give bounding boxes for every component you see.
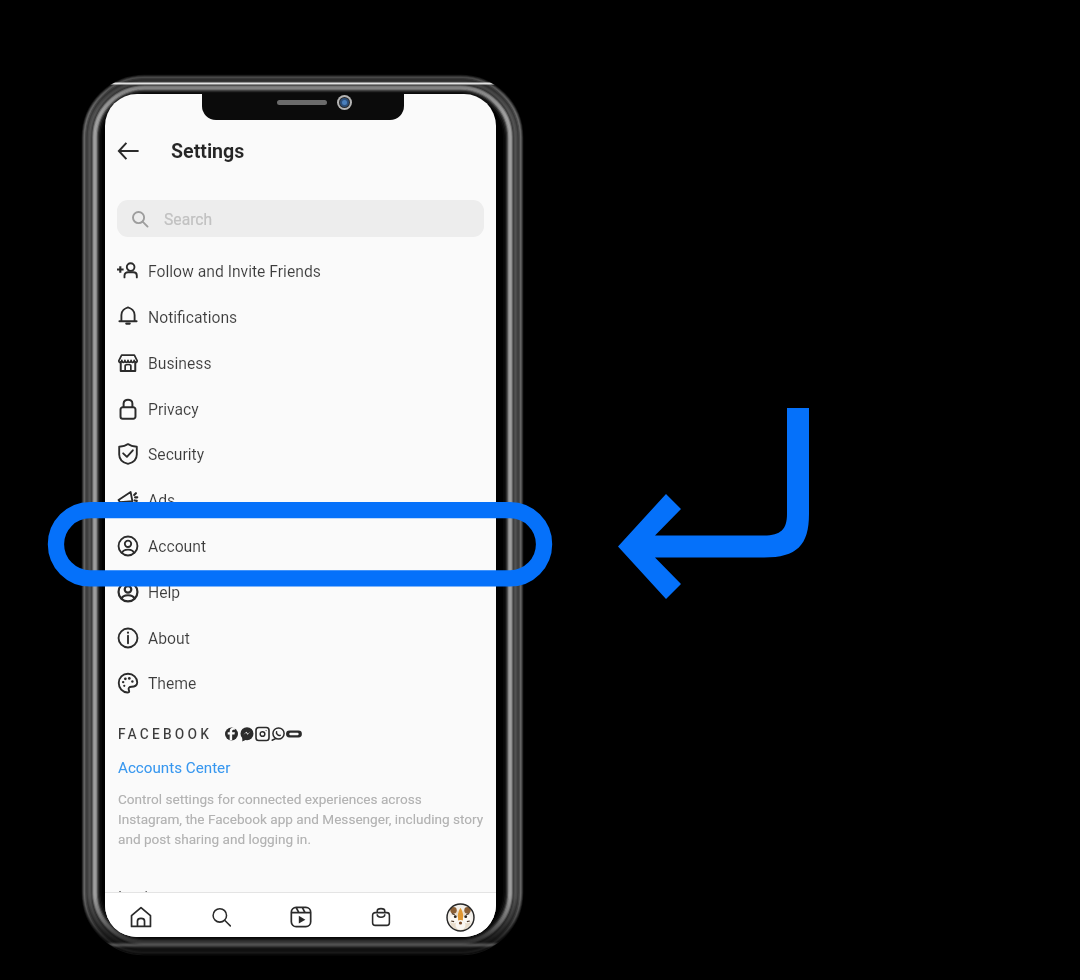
button[interactable]: Business [105, 340, 496, 386]
staticText: FACEBOOK [118, 726, 213, 742]
staticText: Business [148, 354, 212, 372]
staticText: Notifications [148, 308, 238, 326]
button[interactable]: Accounts Center [118, 755, 231, 781]
button[interactable]: Account [105, 523, 496, 569]
staticText: Theme [148, 674, 197, 692]
button[interactable]: Profile [438, 895, 482, 937]
button[interactable]: Ads [105, 477, 496, 523]
staticText: Privacy [148, 400, 199, 418]
staticText: Security [148, 445, 205, 463]
staticText: Follow and Invite Friends [148, 262, 321, 280]
staticText: Help [148, 583, 181, 601]
button[interactable]: Search [117, 200, 484, 237]
button[interactable]: Help [105, 569, 496, 615]
button[interactable]: Notifications [105, 294, 496, 340]
button[interactable]: Home [119, 895, 163, 937]
button[interactable]: Follow and Invite Friends [105, 248, 496, 294]
button[interactable]: Theme [105, 660, 496, 706]
staticText: Ads [148, 491, 176, 509]
staticText: Control settings for connected experienc… [118, 791, 484, 847]
staticText: Search [164, 210, 213, 228]
button[interactable]: Shop [359, 895, 403, 937]
button[interactable]: Reels [279, 895, 323, 937]
staticText: Settings [171, 140, 245, 163]
staticText: Login [118, 888, 157, 906]
staticText: About [148, 629, 190, 647]
button[interactable]: Back [106, 129, 150, 173]
button[interactable]: Security [105, 431, 496, 477]
staticText: Accounts Center [118, 759, 231, 777]
button[interactable]: About [105, 615, 496, 661]
staticText: Account [148, 537, 207, 555]
button[interactable]: Privacy [105, 386, 496, 432]
button[interactable]: Search [199, 895, 243, 937]
